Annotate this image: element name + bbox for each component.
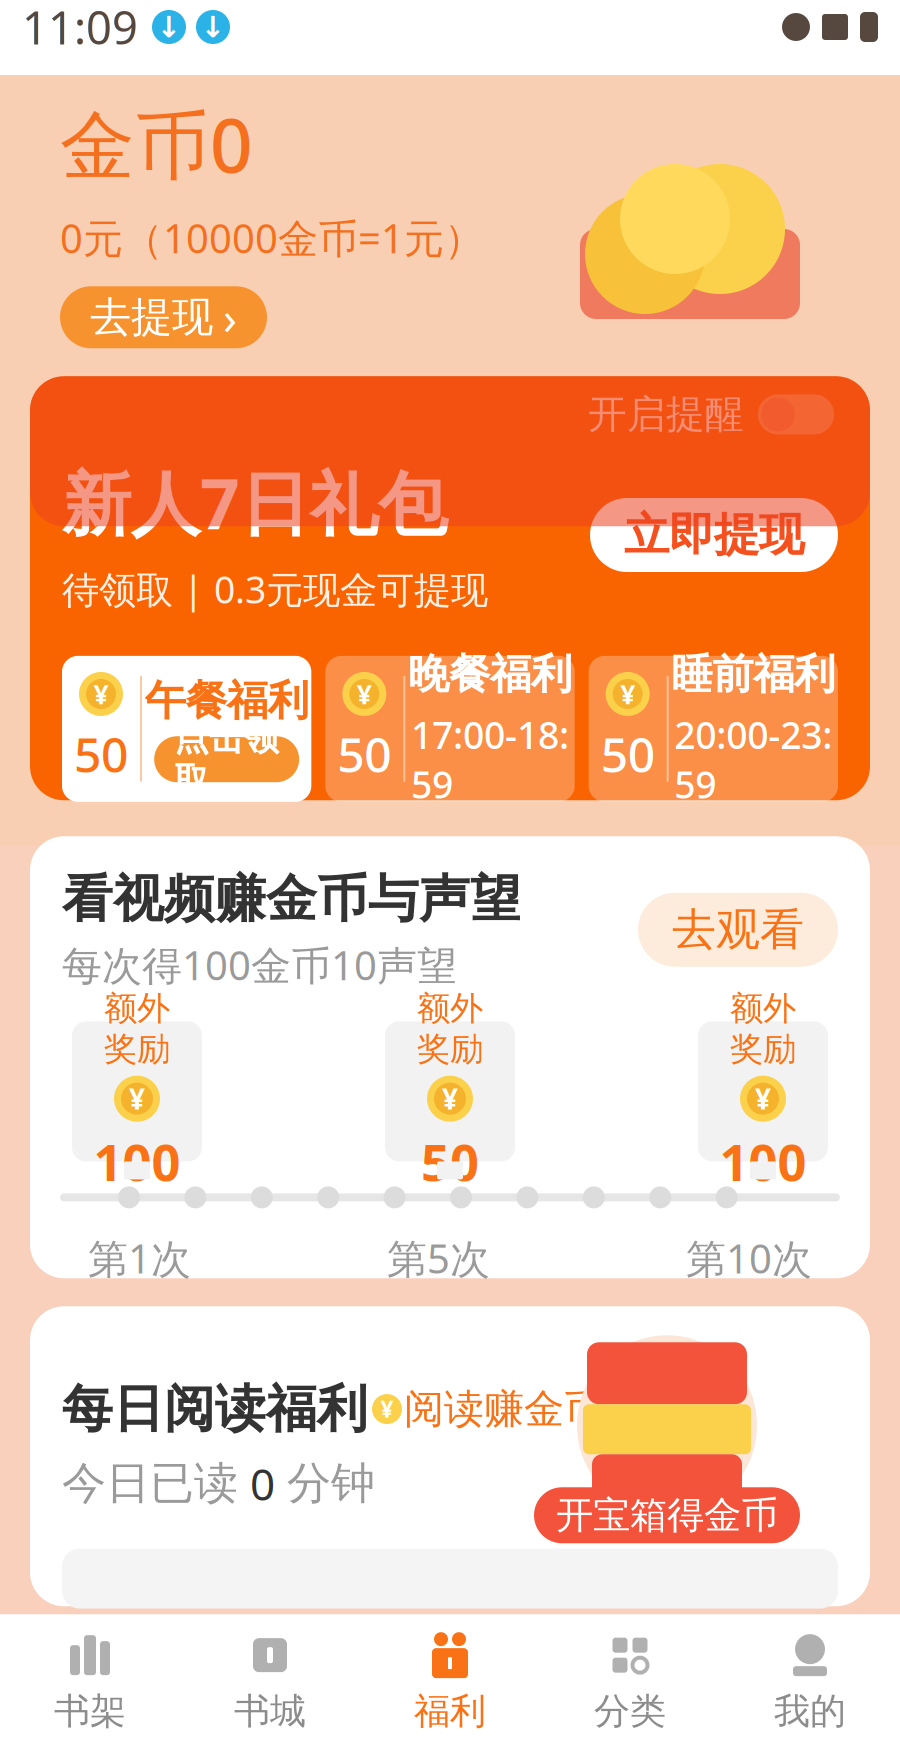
staticText: 第1次 [88,1231,191,1284]
staticText: 我的 [774,1689,846,1733]
staticText: 开启提醒 [588,391,744,438]
staticText: 分类 [594,1689,666,1733]
staticText: 书架 [54,1689,126,1733]
staticText: 11:09 [22,0,138,57]
staticText: 去观看 [672,903,804,957]
staticText: 每日阅读福利 [62,1378,368,1440]
staticText: 阅读赚金币 [404,1384,604,1434]
staticText: 午餐福利 [145,675,309,726]
staticText: 待领取 | 0.3元现金可提现 [62,564,488,614]
button[interactable]: 去观看 [638,893,838,967]
staticText: 100 [719,1128,806,1195]
staticText: 晚餐福利 [408,649,572,700]
button[interactable]: 开启提醒 [588,391,834,438]
staticText: ¥ [755,1080,771,1117]
staticText: ¥ [129,1080,145,1117]
staticText: ¥ [442,1080,458,1117]
button[interactable]: 书架 [0,1614,180,1750]
staticText: 17:00-18:59 [411,710,569,809]
staticText: 额外奖励 [730,988,796,1070]
button[interactable]: 立即提现 [590,498,838,572]
staticText: 50 [74,722,128,786]
staticText: 书城 [234,1689,306,1733]
staticText: 20:00-23:59 [674,710,832,809]
staticText: 新人7日礼包 [62,456,447,548]
staticText: 点击领取 [174,717,279,802]
button[interactable]: 福利 [360,1614,540,1750]
staticText: 0元（10000金币=1元） [60,211,484,264]
staticText: 金币0 [60,94,253,193]
staticText: › [223,287,237,347]
staticText: 0 [250,1454,275,1513]
staticText: 第10次 [686,1231,812,1284]
button[interactable]: ¥ [62,656,311,802]
staticText: 每次得100金币10声望 [62,938,457,991]
button[interactable]: ¥ [589,656,838,802]
staticText: 额外奖励 [104,988,170,1070]
staticText: ↓ [156,10,181,44]
button[interactable]: 书城 [180,1614,360,1750]
staticText: 立即提现 [624,507,804,563]
staticText: ¥ [93,676,108,712]
staticText: 睡前福利 [671,649,835,700]
staticText: 开宝箱得金币 [556,1492,778,1538]
staticText: 分钟 [287,1456,375,1510]
staticText: ¥ [620,676,635,712]
button[interactable]: 分类 [540,1614,720,1750]
staticText: 今日已读 [62,1456,238,1510]
staticText: 去提现 [90,292,213,343]
staticText: 50 [337,722,391,786]
staticText: 额外奖励 [417,988,483,1070]
staticText: ¥ [357,676,372,712]
button[interactable]: 我的 [720,1614,900,1750]
button[interactable]: ¥ [325,656,575,802]
staticText: 第5次 [387,1231,490,1284]
button[interactable]: 开宝箱得金币 [534,1487,800,1543]
staticText: 50 [601,722,655,786]
button[interactable]: 去提现 [60,286,267,348]
staticText: 看视频赚金币与声望 [62,868,521,930]
staticText: 100 [93,1128,180,1195]
staticText: 福利 [414,1689,486,1733]
staticText: ↓ [200,10,225,44]
staticText: 50 [421,1128,479,1195]
staticText: ¥ [380,1394,393,1424]
